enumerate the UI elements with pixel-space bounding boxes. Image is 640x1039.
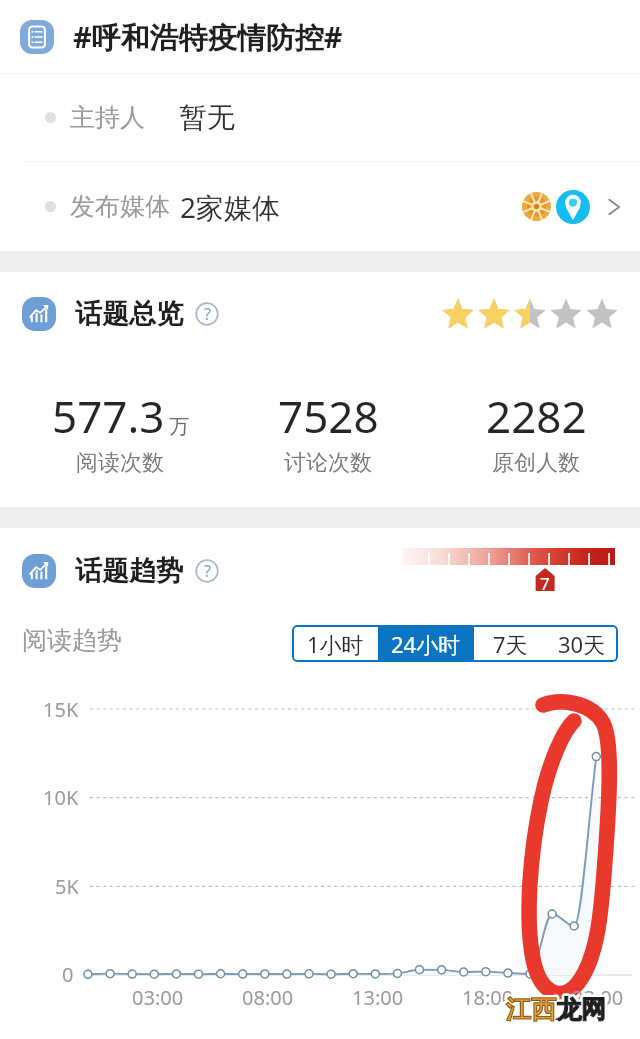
staticText: 2家媒体: [180, 188, 281, 226]
staticText: ?: [204, 303, 211, 325]
staticText: 讨论次数: [284, 449, 372, 477]
staticText: 30天: [558, 629, 606, 659]
staticText: 话题总览: [75, 297, 183, 331]
staticText: 7: [540, 572, 550, 595]
button[interactable]: 30天: [546, 625, 618, 662]
staticText: 江西: [506, 994, 556, 1025]
staticText: 龙网: [556, 994, 606, 1025]
staticText: 龙网: [556, 994, 606, 1025]
staticText: 7528: [278, 386, 379, 446]
button[interactable]: 主持人: [0, 74, 640, 161]
staticText: 08:00: [242, 984, 294, 1011]
staticText: 江西龙网: [506, 994, 606, 1025]
staticText: 阅读次数: [76, 449, 164, 477]
staticText: 5K: [55, 873, 79, 900]
button[interactable]: 话题评分 2.5 星: [440, 296, 620, 332]
staticText: 15K: [43, 696, 79, 723]
button[interactable]: 查看媒体: [601, 194, 627, 220]
staticText: 03:00: [132, 984, 184, 1011]
staticText: 原创人数: [492, 449, 580, 477]
staticText: 18:00: [462, 984, 514, 1011]
staticText: 23:00: [572, 984, 624, 1011]
button[interactable]: 热度指数 7: [402, 545, 615, 597]
staticText: 577.3: [52, 386, 165, 446]
staticText: 10K: [43, 784, 79, 811]
staticText: #呼和浩特疫情防控#: [73, 17, 343, 57]
button[interactable]: 说明: [195, 559, 219, 583]
staticText: 发布媒体: [70, 191, 170, 222]
button[interactable]: 发布媒体: [0, 162, 640, 251]
staticText: 主持人: [70, 102, 145, 133]
staticText: 1小时: [307, 629, 364, 659]
button[interactable]: #呼和浩特疫情防控#: [0, 0, 640, 73]
staticText: 暂无: [179, 100, 235, 135]
staticText: 江西: [506, 994, 556, 1025]
staticText: 阅读趋势: [22, 625, 122, 656]
staticText: 0: [62, 961, 74, 988]
button[interactable]: 说明: [195, 302, 219, 326]
staticText: 2282: [486, 386, 587, 446]
staticText: 话题趋势: [75, 554, 183, 588]
staticText: 13:00: [352, 984, 404, 1011]
staticText: 7天: [493, 629, 528, 659]
button[interactable]: 7天: [474, 625, 546, 662]
staticText: ?: [204, 560, 211, 582]
staticText: 24小时: [391, 629, 461, 659]
button[interactable]: 1小时: [292, 625, 378, 662]
staticText: 万: [169, 414, 189, 439]
button[interactable]: 24小时: [378, 625, 474, 662]
